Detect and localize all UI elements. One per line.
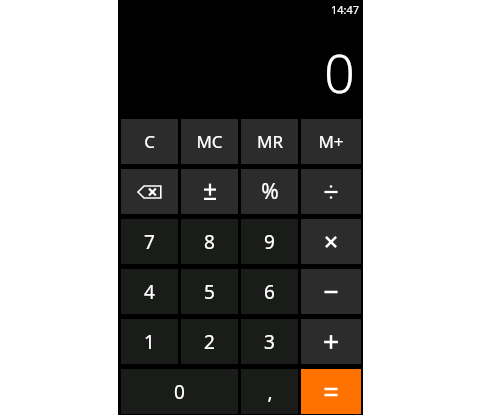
button[interactable]: Multiply [301,219,361,264]
button[interactable]: 5 [181,269,238,314]
button[interactable]: 6 [241,269,298,314]
staticText: 8 [204,229,215,255]
button[interactable]: 0 [121,369,238,414]
staticText: C [144,130,155,153]
staticText: 14:47 [331,2,360,17]
button[interactable]: 8 [181,219,238,264]
button[interactable]: MR [241,119,298,164]
button[interactable]: Minus [301,269,361,314]
button[interactable]: 4 [121,269,178,314]
button[interactable]: MC [181,119,238,164]
staticText: % [261,177,279,206]
staticText: MR [257,130,283,153]
staticText: 9 [264,229,275,255]
staticText: 4 [144,279,155,305]
button[interactable]: M+ [301,119,361,164]
button[interactable]: 9 [241,219,298,264]
button[interactable]: 1 [121,319,178,364]
staticText: 0 [174,379,185,405]
button[interactable]: % [241,169,298,214]
staticText: 6 [264,279,275,305]
staticText: MC [196,130,223,153]
staticText: 5 [204,279,215,305]
button[interactable]: 2 [181,319,238,364]
button[interactable]: Plus [301,319,361,364]
button[interactable]: Divide [301,169,361,214]
staticText: , [267,379,273,405]
staticText: 0 [324,35,355,109]
staticText: 3 [264,329,275,355]
staticText: 7 [144,229,155,255]
button[interactable]: 7 [121,219,178,264]
button[interactable]: , [241,369,298,414]
button[interactable]: Plus minus [181,169,238,214]
staticText: 1 [144,329,155,355]
button[interactable]: Equals [301,369,361,414]
button[interactable]: C [121,119,178,164]
staticText: 2 [204,329,215,355]
button[interactable]: 3 [241,319,298,364]
button[interactable]: Backspace [121,169,178,214]
staticText: M+ [318,130,344,153]
